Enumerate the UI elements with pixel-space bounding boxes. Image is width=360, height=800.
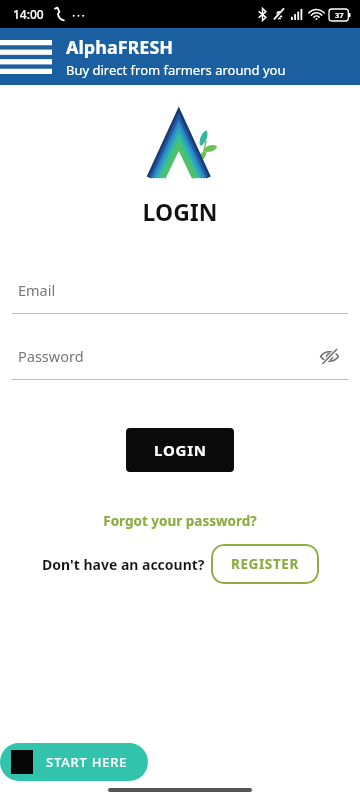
staticText: START HERE [46,753,128,771]
button[interactable]: LOGIN [126,428,234,472]
staticText: REGISTER [231,555,299,573]
button[interactable]: Show password [319,346,340,367]
button[interactable]: Open navigation menu [0,40,52,74]
staticText: AlphaFRESH [66,35,174,60]
staticText: Don't have an account? [42,555,205,574]
staticText: LOGIN [154,440,207,460]
button[interactable]: REGISTER [211,544,319,584]
staticText: 37 [335,10,344,20]
staticText: Password [18,346,84,366]
button[interactable]: Password [12,345,348,367]
staticText: Buy direct from farmers around you [66,61,286,79]
button[interactable]: START HERE [0,743,148,781]
staticText: 14:00 [13,6,44,22]
staticText: Email [18,280,56,300]
staticText: LOGIN [0,196,360,227]
button[interactable]: Email [12,279,348,301]
button[interactable]: Forgot your password? [0,512,360,530]
